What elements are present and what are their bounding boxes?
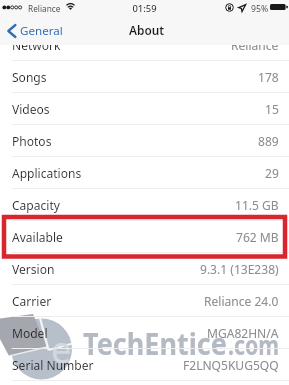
staticText: Network — [12, 37, 61, 53]
staticText: 762 MB — [236, 229, 279, 245]
button[interactable]: Videos — [0, 93, 289, 125]
staticText: 95% — [251, 2, 268, 15]
button[interactable]: Photos — [0, 125, 289, 157]
staticText: Reliance — [28, 2, 61, 15]
staticText: Carrier — [12, 293, 52, 309]
staticText: Capacity — [12, 197, 60, 213]
button[interactable]: Network — [0, 29, 289, 61]
button[interactable]: Carrier — [0, 285, 289, 317]
button[interactable]: Applications — [0, 157, 289, 189]
staticText: Reliance 24.0 — [204, 293, 279, 309]
staticText: .com — [228, 327, 280, 362]
staticText: 29 — [265, 165, 279, 181]
staticText: About — [129, 21, 165, 39]
button[interactable]: Capacity — [0, 189, 289, 221]
staticText: 889 — [258, 133, 279, 149]
button[interactable]: Available — [0, 221, 289, 253]
staticText: 178 — [258, 69, 279, 85]
staticText: 11.5 GB — [235, 197, 279, 213]
staticText: Serial Number — [12, 357, 94, 373]
button[interactable]: Serial Number — [0, 349, 289, 381]
staticText: TechEntice — [83, 323, 227, 364]
staticText: Photos — [12, 133, 52, 149]
staticText: Songs — [12, 69, 47, 85]
staticText: 01:59 — [0, 2, 289, 15]
button[interactable]: Model — [0, 317, 289, 349]
button[interactable]: Songs — [0, 61, 289, 93]
staticText: 15 — [265, 101, 279, 117]
staticText: 9.3.1 (13E238) — [200, 261, 279, 277]
button[interactable]: Version — [0, 253, 289, 285]
staticText: Applications — [12, 165, 82, 181]
staticText: Model — [12, 325, 48, 341]
other: Back to General — [7, 24, 16, 38]
staticText: e — [51, 325, 72, 374]
staticText: Videos — [12, 101, 50, 117]
staticText: Reliance — [231, 37, 279, 53]
button[interactable]: Back to General — [0, 20, 69, 42]
staticText: MGA82HN/A — [207, 325, 279, 341]
staticText: F2LNQ5KUG5QQ — [183, 357, 279, 373]
staticText: General — [20, 23, 63, 39]
staticText: Available — [12, 229, 63, 245]
staticText: Version — [12, 261, 55, 277]
